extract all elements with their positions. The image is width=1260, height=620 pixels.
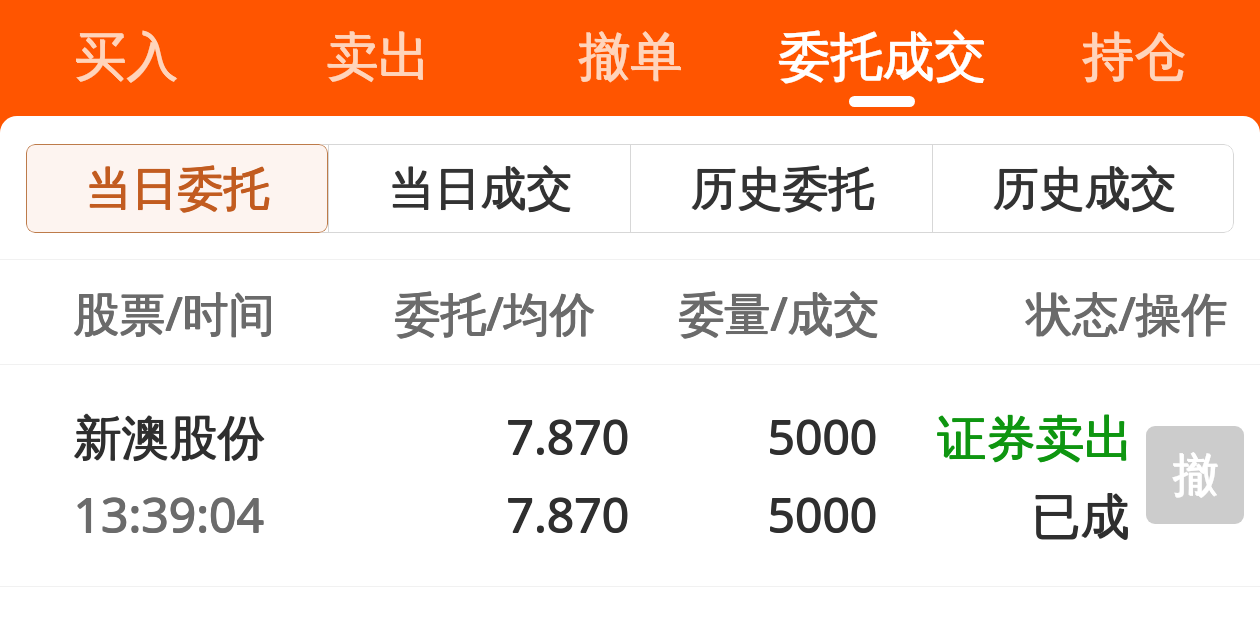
staticText: 撤 xyxy=(1173,447,1219,505)
staticText: 状态/操作 xyxy=(1026,282,1228,345)
staticText: 撤单 xyxy=(578,24,682,90)
staticText: 状态/操作 xyxy=(1027,281,1229,344)
staticText: 当日成交 xyxy=(389,161,573,219)
button[interactable]: 买入 xyxy=(0,0,252,116)
button[interactable]: 委托成交 xyxy=(756,0,1008,116)
button[interactable]: 卖出 xyxy=(252,0,504,116)
button[interactable]: 持仓 xyxy=(1008,0,1260,116)
staticText: 当日成交 xyxy=(388,161,572,219)
staticText: 当日委托 xyxy=(85,160,269,218)
staticText: 证券卖出 xyxy=(938,408,1134,470)
staticText: 股票/时间 xyxy=(74,281,276,344)
staticText: 证券卖出 xyxy=(937,409,1133,471)
staticText: 股票/时间 xyxy=(74,282,276,345)
staticText: 当日委托 xyxy=(85,161,269,219)
staticText: 5000 xyxy=(768,481,878,546)
staticText: 当日成交 xyxy=(389,160,573,218)
staticText: 委量/成交 xyxy=(679,281,881,344)
staticText: 5000 xyxy=(767,481,877,546)
staticText: 7.870 xyxy=(506,404,629,469)
staticText: 历史成交 xyxy=(992,161,1176,219)
staticText: 股票/时间 xyxy=(73,281,275,344)
staticText: 证券卖出 xyxy=(937,408,1133,470)
staticText: 历史委托 xyxy=(690,161,874,219)
staticText: 委托/均价 xyxy=(394,282,596,345)
button[interactable]: 当日成交 xyxy=(329,144,630,233)
button[interactable]: 新澳股份 xyxy=(0,365,1260,586)
staticText: 新澳股份 xyxy=(73,408,265,468)
staticText: 新澳股份 xyxy=(73,409,265,469)
staticText: 当日成交 xyxy=(388,160,572,218)
staticText: 5000 xyxy=(767,404,877,469)
staticText: 委托/均价 xyxy=(394,281,596,344)
staticText: 买入 xyxy=(74,24,178,90)
staticText: 卖出 xyxy=(327,25,431,91)
staticText: 5000 xyxy=(767,403,877,468)
staticText: 已成 xyxy=(1032,487,1130,549)
staticText: 持仓 xyxy=(1083,25,1187,91)
staticText: 委托/均价 xyxy=(395,281,597,344)
staticText: 委量/成交 xyxy=(678,282,880,345)
staticText: 5000 xyxy=(768,403,878,468)
button[interactable]: 历史成交 xyxy=(933,144,1234,233)
staticText: 委量/成交 xyxy=(678,281,880,344)
staticText: 新澳股份 xyxy=(74,408,266,468)
staticText: 13:39:04 xyxy=(74,482,265,547)
staticText: 当日委托 xyxy=(86,160,270,218)
staticText: 7.870 xyxy=(506,481,629,546)
staticText: 历史委托 xyxy=(691,161,875,219)
staticText: 已成 xyxy=(1031,486,1129,548)
staticText: 5000 xyxy=(767,482,877,547)
button[interactable]: 撤单 xyxy=(504,0,756,116)
staticText: 新澳股份 xyxy=(74,409,266,469)
staticText: 委托成交 xyxy=(779,25,987,91)
staticText: 13:39:04 xyxy=(73,482,264,547)
staticText: 委托成交 xyxy=(778,24,986,90)
staticText: 7.870 xyxy=(506,403,629,468)
staticText: 撤 xyxy=(1172,446,1218,504)
staticText: 历史成交 xyxy=(992,160,1176,218)
staticText: 历史委托 xyxy=(690,160,874,218)
staticText: 已成 xyxy=(1032,486,1130,548)
staticText: 历史委托 xyxy=(691,160,875,218)
staticText: 13:39:04 xyxy=(74,481,265,546)
staticText: 撤单 xyxy=(579,25,683,91)
staticText: 5000 xyxy=(768,482,878,547)
staticText: 5000 xyxy=(768,404,878,469)
staticText: 股票/时间 xyxy=(73,282,275,345)
staticText: 证券卖出 xyxy=(938,409,1134,471)
button[interactable]: 历史委托 xyxy=(631,144,932,233)
staticText: 状态/操作 xyxy=(1026,281,1228,344)
staticText: 状态/操作 xyxy=(1027,282,1229,345)
staticText: 13:39:04 xyxy=(73,481,264,546)
staticText: 委托/均价 xyxy=(395,282,597,345)
staticText: 持仓 xyxy=(1082,24,1186,90)
staticText: 当日委托 xyxy=(86,161,270,219)
staticText: 历史成交 xyxy=(993,160,1177,218)
staticText: 历史成交 xyxy=(993,161,1177,219)
staticText: 已成 xyxy=(1031,487,1129,549)
button[interactable]: 撤单 xyxy=(1146,426,1244,524)
staticText: 7.870 xyxy=(507,404,630,469)
staticText: 委量/成交 xyxy=(679,282,881,345)
staticText: 卖出 xyxy=(326,24,430,90)
staticText: 7.870 xyxy=(507,403,630,468)
button[interactable]: 当日委托 xyxy=(26,144,328,233)
staticText: 7.870 xyxy=(507,481,630,546)
staticText: 买入 xyxy=(75,25,179,91)
staticText: 7.870 xyxy=(507,482,630,547)
staticText: 7.870 xyxy=(506,482,629,547)
